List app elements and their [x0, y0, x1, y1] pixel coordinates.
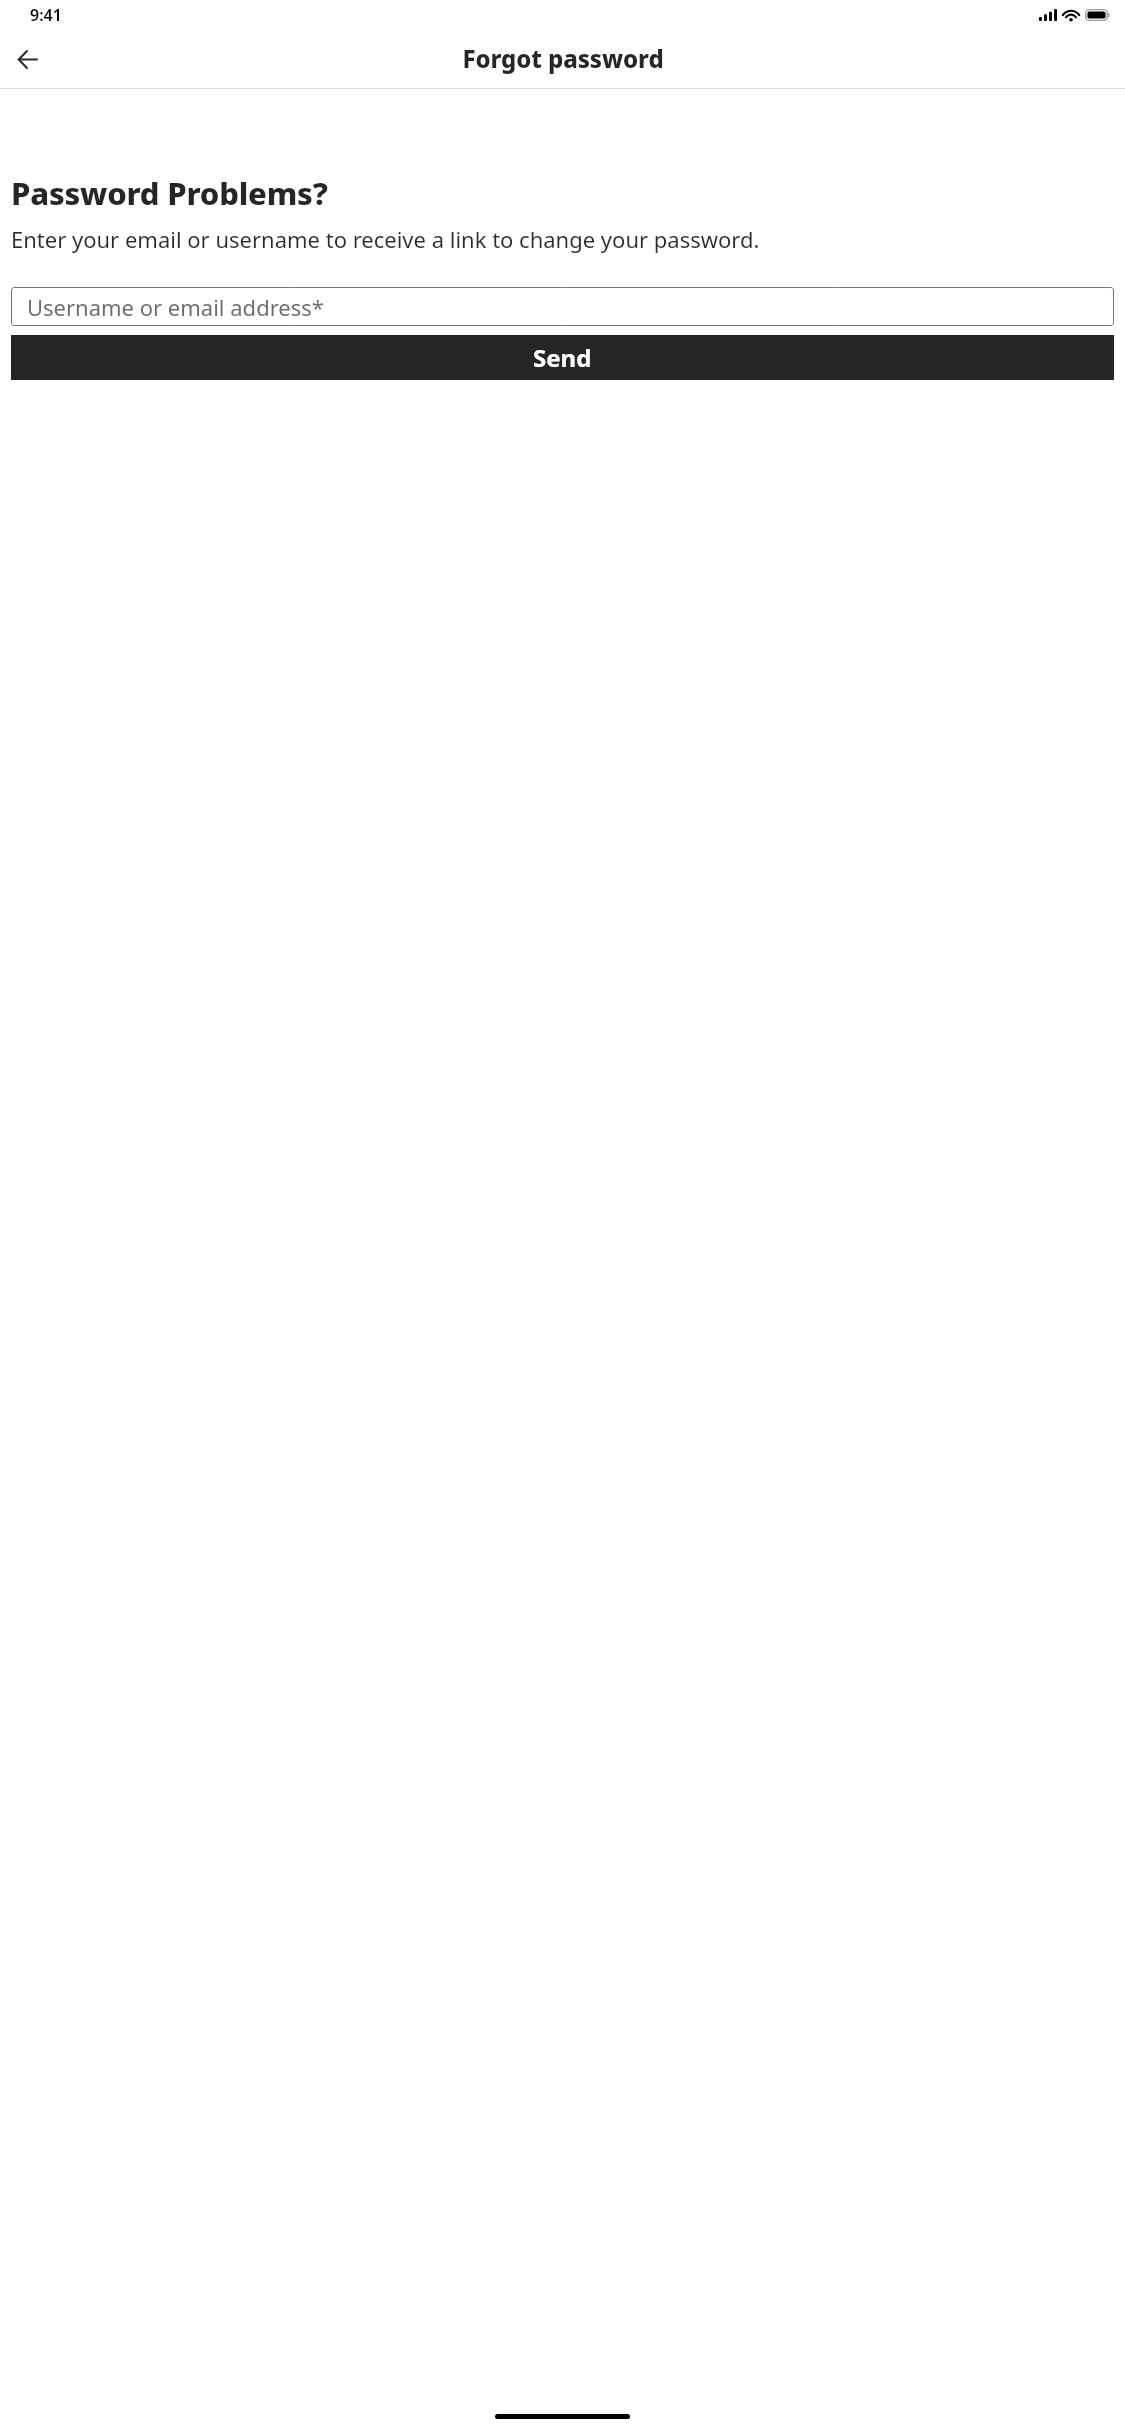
- button[interactable]: Back: [2, 34, 52, 84]
- staticText: Send: [533, 341, 592, 374]
- staticText: Forgot password: [462, 42, 664, 75]
- button[interactable]: Username or email address*: [11, 287, 1114, 326]
- staticText: 9:41: [30, 4, 62, 26]
- staticText: Username or email address*: [27, 292, 324, 322]
- staticText: Enter your email or username to receive …: [11, 224, 760, 254]
- staticText: Password Problems?: [11, 172, 328, 214]
- button[interactable]: Send: [11, 335, 1114, 380]
